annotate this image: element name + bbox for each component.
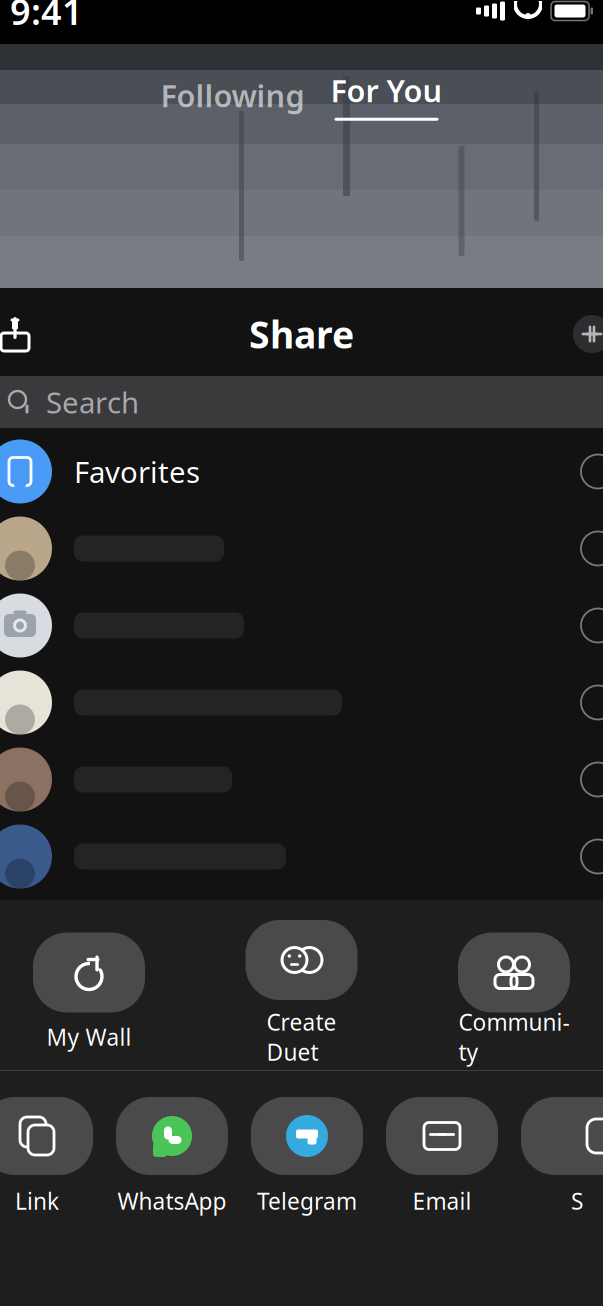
staticText: 9:41 <box>10 0 83 35</box>
staticText: Favorites <box>74 452 200 491</box>
button[interactable]: Telegram <box>251 1097 363 1216</box>
staticText: Community <box>458 1007 569 1067</box>
button[interactable]: Create Duet <box>242 920 360 1062</box>
button[interactable]: Favorites <box>0 433 603 510</box>
staticText: My Wall <box>46 1022 131 1052</box>
button[interactable] <box>0 510 603 587</box>
staticText: For You <box>330 70 442 111</box>
staticText: S <box>571 1186 583 1216</box>
button[interactable]: Community <box>455 932 573 1049</box>
staticText: Email <box>412 1186 471 1216</box>
staticText: Search <box>46 382 139 421</box>
staticText: WhatsApp <box>117 1186 226 1216</box>
button[interactable] <box>0 587 603 664</box>
button[interactable]: Email <box>386 1097 498 1216</box>
button[interactable]: For You <box>330 70 442 121</box>
button[interactable]: S <box>521 1097 603 1216</box>
button[interactable]: Following <box>160 71 304 120</box>
button[interactable] <box>0 818 603 895</box>
button[interactable] <box>0 664 603 741</box>
staticText: Telegram <box>257 1186 357 1216</box>
button[interactable]: My Wall <box>30 932 148 1049</box>
button[interactable] <box>0 741 603 818</box>
button[interactable]: Search <box>0 376 603 428</box>
staticText: Share <box>249 309 354 359</box>
staticText: Following <box>160 75 304 116</box>
button[interactable]: WhatsApp <box>116 1097 228 1216</box>
button[interactable]: Link <box>0 1097 93 1216</box>
staticText: Link <box>15 1186 59 1216</box>
staticText: Create Duet <box>266 1007 336 1067</box>
button[interactable]: Close <box>573 315 603 353</box>
button[interactable]: Share <box>0 311 38 357</box>
